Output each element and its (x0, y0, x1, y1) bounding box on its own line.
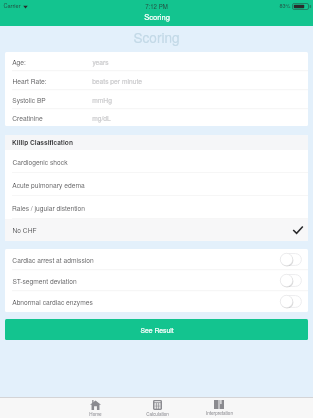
staticText: ST-segment deviation (12, 276, 77, 286)
staticText: Cardiogenic shock (12, 157, 68, 167)
staticText: mmHg (92, 95, 112, 105)
staticText: Age: (12, 57, 26, 67)
button[interactable]: Calculation (126, 398, 188, 418)
button[interactable]: Rales / jugular distention (5, 196, 308, 219)
staticText: Creatinine (12, 113, 43, 123)
button[interactable]: Systolic BP (5, 90, 308, 109)
staticText: Abnormal cardiac enzymes (12, 297, 93, 307)
button[interactable]: Cardiac arrest at admission (5, 249, 308, 270)
button[interactable]: Home (64, 398, 126, 418)
staticText: 83% (279, 2, 291, 10)
staticText: mg/dL (92, 113, 111, 123)
staticText: Acute pulmonary edema (12, 180, 85, 190)
staticText: years (92, 57, 109, 67)
staticText: Home (89, 411, 102, 418)
staticText: Carrier (3, 2, 21, 10)
staticText: Killip Classification (12, 138, 73, 147)
other: Calculation (153, 400, 162, 410)
button[interactable]: Interpretation (188, 398, 250, 418)
staticText: Rales / jugular distention (12, 203, 85, 213)
staticText: Calculation (146, 411, 169, 418)
button[interactable]: Acute pulmonary edema (5, 173, 308, 196)
staticText: No CHF (12, 225, 37, 235)
staticText: Cardiac arrest at admission (12, 255, 94, 265)
button[interactable]: Abnormal cardiac enzymes (5, 291, 308, 312)
staticText: Heart Rate: (12, 76, 47, 86)
other: Home (90, 400, 101, 410)
staticText: Interpretation (206, 410, 233, 417)
button[interactable]: ST-segment deviation (5, 270, 308, 291)
other: Interpretation (214, 400, 224, 409)
staticText: Scoring (144, 11, 170, 22)
staticText: Systolic BP (12, 95, 46, 105)
button[interactable]: Heart Rate: (5, 71, 308, 90)
staticText: See Result (140, 325, 174, 335)
staticText: Scoring (133, 27, 180, 46)
button[interactable]: Cardiogenic shock (5, 150, 308, 173)
staticText: 7:12 PM (145, 2, 168, 11)
staticText: beats per minute (92, 76, 142, 86)
button[interactable]: Creatinine (5, 109, 308, 126)
button[interactable]: Age: (5, 52, 308, 71)
button[interactable]: See Result (5, 319, 308, 340)
button[interactable]: No CHF (5, 219, 308, 241)
